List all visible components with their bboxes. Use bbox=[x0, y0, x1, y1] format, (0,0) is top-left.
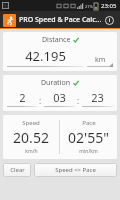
button[interactable]: 03 bbox=[44, 90, 75, 107]
staticText: Speed <> Pace bbox=[55, 166, 96, 174]
button[interactable]: Speed <> Pace bbox=[34, 163, 117, 177]
staticText: Speed bbox=[22, 119, 40, 127]
staticText: km bbox=[95, 55, 106, 65]
button[interactable]: Distance unit bbox=[87, 55, 113, 67]
button[interactable]: Clear bbox=[3, 163, 31, 177]
staticText: Clear bbox=[10, 166, 25, 174]
staticText: PRO Speed & Pace Calc... bbox=[19, 15, 102, 25]
staticText: 42.195 bbox=[25, 47, 66, 65]
staticText: Distance bbox=[42, 35, 71, 45]
staticText: : bbox=[39, 95, 42, 106]
staticText: 21% bbox=[85, 4, 93, 9]
button[interactable]: Speed bbox=[3, 119, 59, 155]
staticText: 23 bbox=[91, 90, 104, 105]
button[interactable]: Pace bbox=[60, 119, 117, 155]
staticText: Pace bbox=[82, 119, 96, 127]
staticText: 03 bbox=[53, 90, 66, 105]
staticText: 02'55" bbox=[68, 128, 109, 147]
staticText: : bbox=[77, 95, 80, 106]
button[interactable]: Info bbox=[102, 12, 117, 28]
staticText: 2 bbox=[19, 90, 26, 105]
staticText: km/h bbox=[25, 148, 38, 155]
staticText: min/km bbox=[79, 148, 98, 155]
staticText: 23:05 bbox=[101, 2, 117, 10]
staticText: Duration bbox=[41, 78, 71, 88]
button[interactable]: 23 bbox=[82, 90, 113, 107]
button[interactable]: 2 bbox=[7, 90, 37, 107]
staticText: 20.52 bbox=[13, 128, 49, 147]
button[interactable]: 42.195 bbox=[7, 47, 83, 67]
button[interactable]: App icon bbox=[3, 14, 16, 27]
